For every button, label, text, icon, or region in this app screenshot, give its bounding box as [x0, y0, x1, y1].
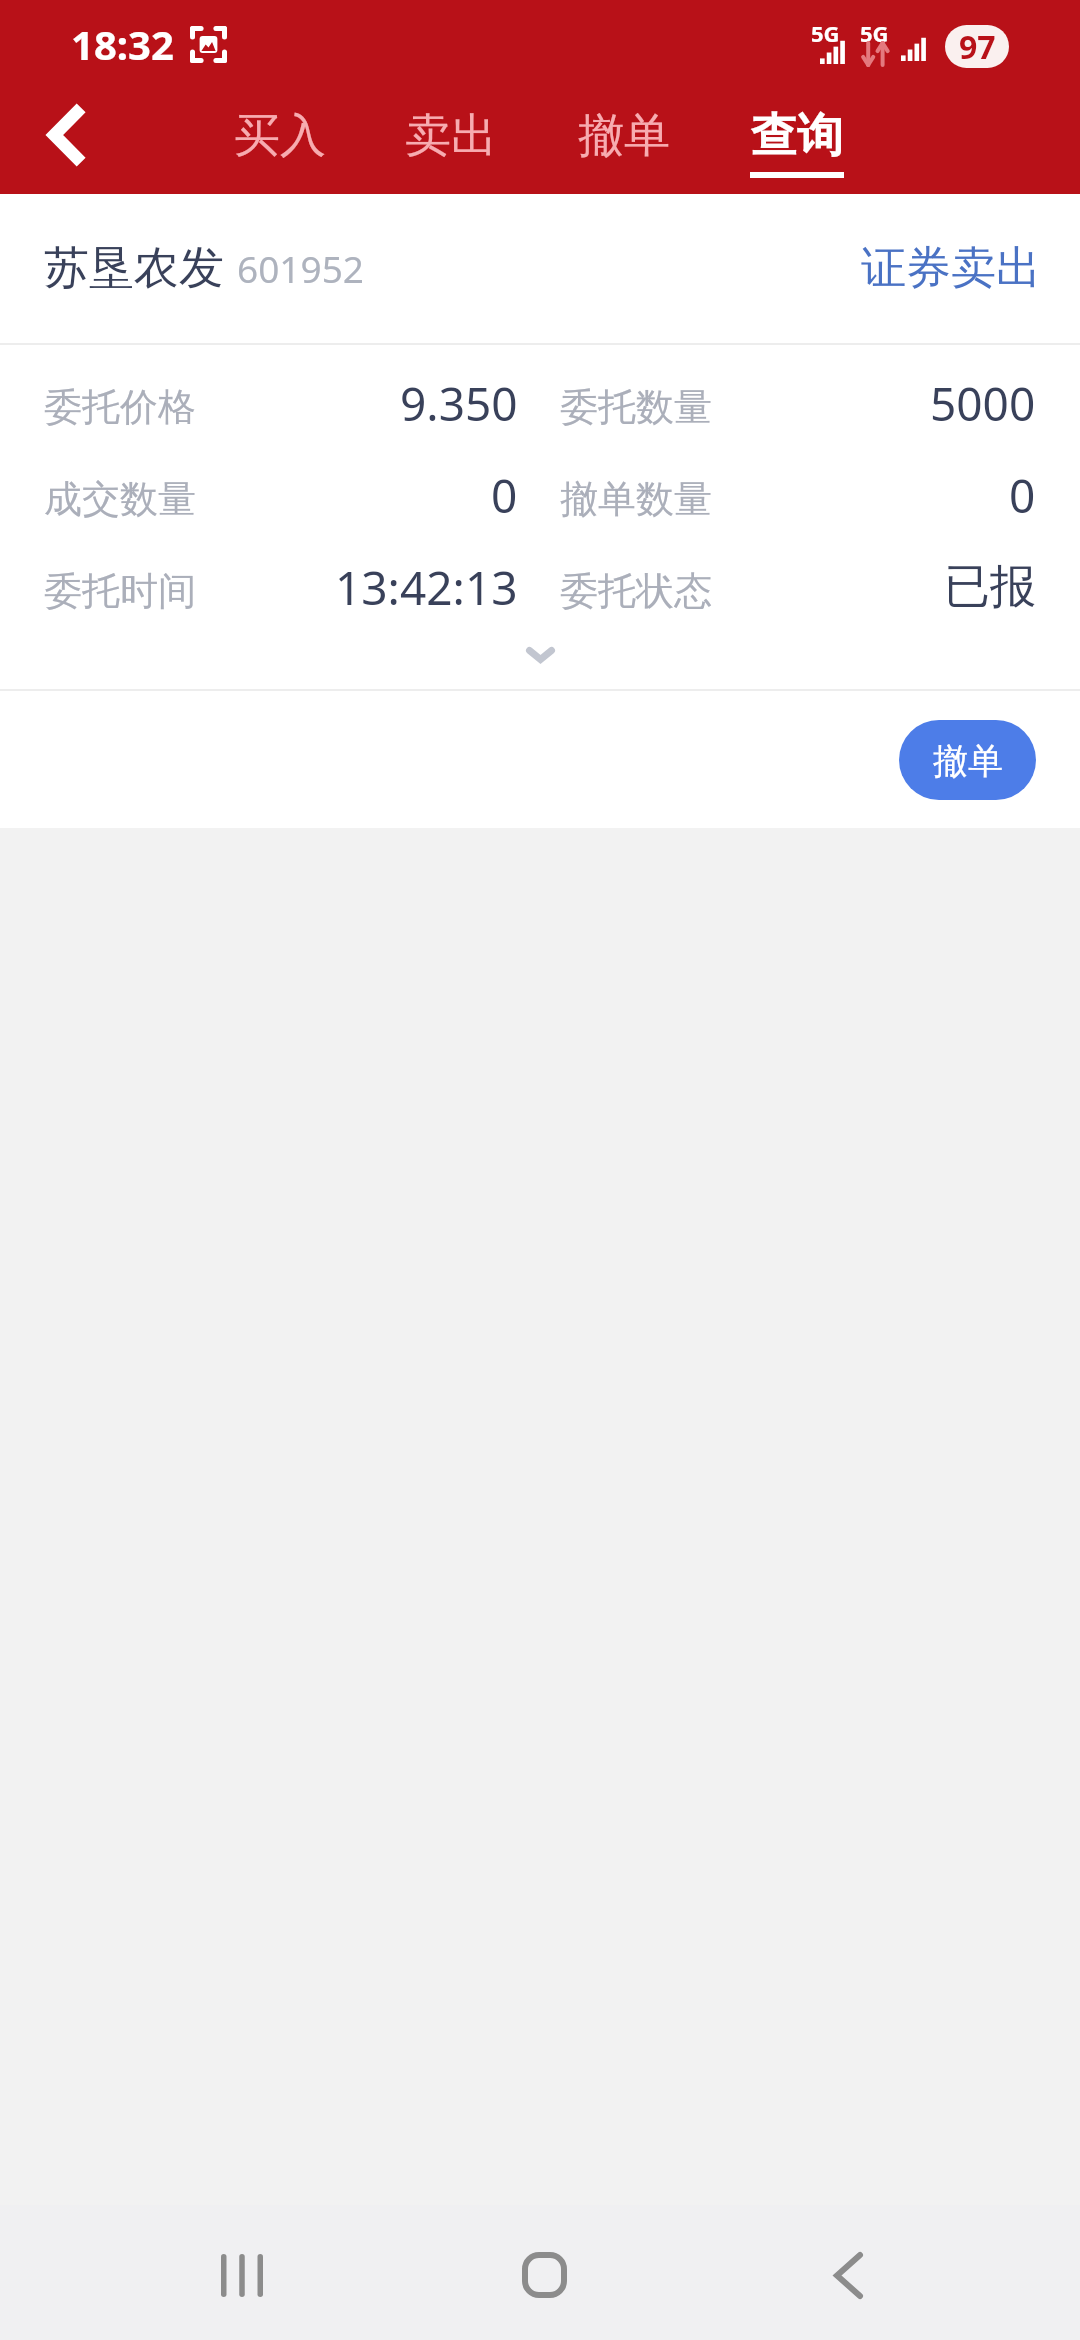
button[interactable]: Back — [5, 88, 125, 188]
staticText: 13:42:13 — [335, 556, 518, 619]
staticText: 9.350 — [400, 372, 518, 435]
staticText: 撤单 — [578, 107, 670, 165]
staticText: 97 — [959, 25, 996, 68]
staticText: 委托时间 — [44, 567, 196, 615]
staticText: 委托状态 — [560, 567, 712, 615]
staticText: 已报 — [944, 558, 1036, 616]
staticText: 卖出 — [405, 107, 497, 165]
staticText: 委托价格 — [44, 383, 196, 431]
staticText: 成交数量 — [44, 475, 196, 523]
button[interactable]: Expand details — [0, 637, 1080, 689]
staticText: 撤单数量 — [560, 475, 712, 523]
button[interactable]: 买入 — [194, 88, 366, 194]
button[interactable]: 撤单 — [538, 88, 710, 194]
button[interactable]: Back — [798, 2225, 898, 2325]
staticText: 0 — [491, 464, 518, 527]
staticText: 0 — [1009, 464, 1036, 527]
staticText: 委托数量 — [560, 383, 712, 431]
button[interactable]: 苏垦农发 — [0, 194, 1080, 343]
staticText: 601952 — [237, 243, 364, 293]
staticText: 18:32 — [71, 17, 174, 71]
staticText: 5G — [860, 18, 889, 48]
button[interactable]: 卖出 — [365, 88, 537, 194]
staticText: 苏垦农发 — [44, 240, 224, 297]
staticText: 证券卖出 — [861, 240, 1041, 297]
button[interactable]: Recent apps — [192, 2225, 292, 2325]
staticText: 撤单 — [933, 739, 1003, 783]
button[interactable]: 查询 — [711, 88, 883, 194]
button[interactable]: 撤单 — [899, 720, 1036, 800]
button[interactable]: Home — [494, 2225, 594, 2325]
staticText: 5000 — [930, 372, 1036, 435]
staticText: 查询 — [751, 107, 843, 165]
staticText: 买入 — [234, 107, 326, 165]
staticText: 5G — [811, 18, 840, 48]
